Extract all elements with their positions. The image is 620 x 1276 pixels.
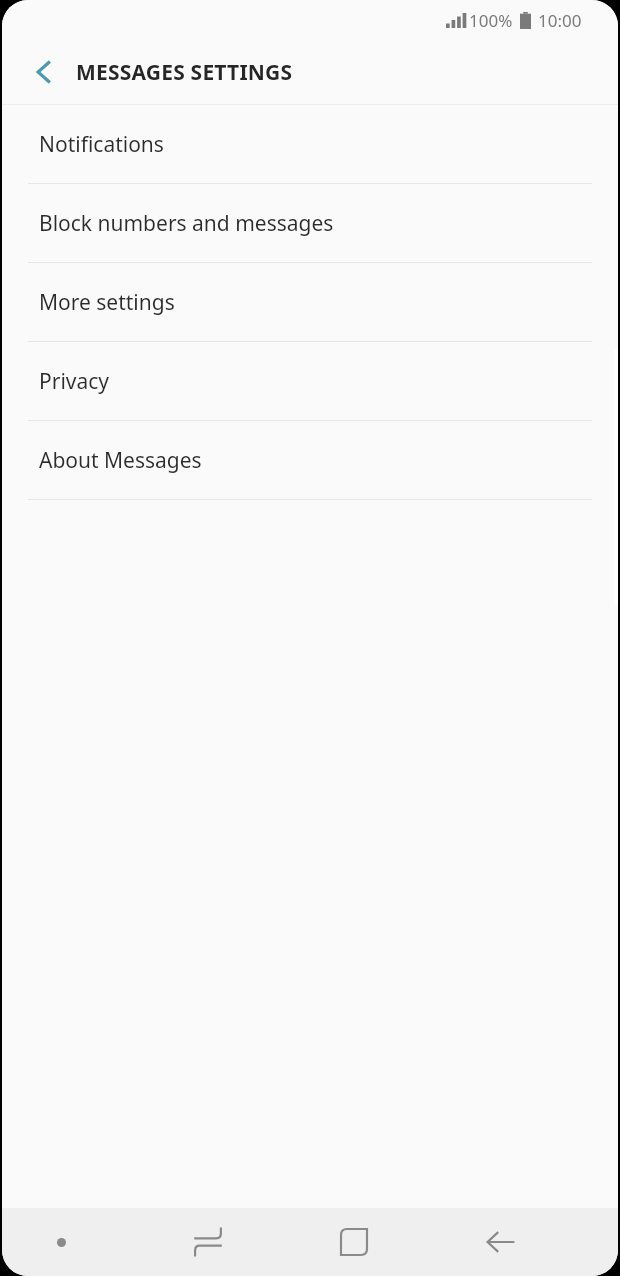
staticText: Privacy bbox=[39, 367, 110, 396]
button[interactable]: Home bbox=[295, 1208, 413, 1276]
button[interactable]: Privacy bbox=[2, 342, 618, 420]
staticText: More settings bbox=[39, 288, 175, 317]
staticText: Block numbers and messages bbox=[39, 209, 334, 238]
staticText: 100% bbox=[469, 9, 513, 32]
button[interactable]: Recents bbox=[149, 1208, 267, 1276]
button[interactable]: Notifications bbox=[2, 105, 618, 183]
staticText: Notifications bbox=[39, 130, 164, 159]
button[interactable]: Back bbox=[22, 50, 66, 94]
button[interactable]: About Messages bbox=[2, 421, 618, 499]
staticText: About Messages bbox=[39, 446, 202, 475]
staticText: 10:00 bbox=[538, 9, 582, 32]
staticText: MESSAGES SETTINGS bbox=[76, 58, 293, 87]
button[interactable]: Back bbox=[442, 1208, 560, 1276]
button[interactable]: More settings bbox=[2, 263, 618, 341]
button[interactable]: Block numbers and messages bbox=[2, 184, 618, 262]
